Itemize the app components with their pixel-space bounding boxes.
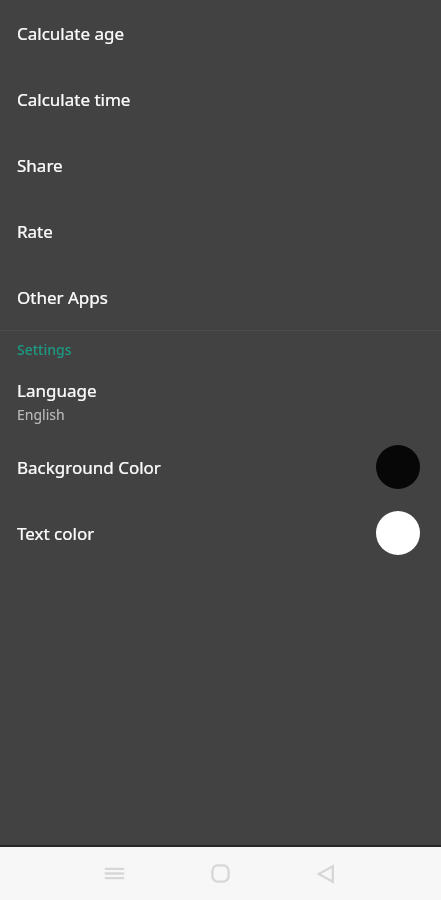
- staticText: English: [17, 405, 65, 424]
- staticText: Other Apps: [17, 286, 108, 309]
- button[interactable]: Back: [273, 847, 379, 900]
- staticText: Text color: [17, 522, 95, 545]
- button[interactable]: Home: [167, 847, 273, 900]
- button[interactable]: Recents: [62, 847, 167, 900]
- button[interactable]: Rate: [0, 198, 441, 264]
- button[interactable]: Other Apps: [0, 264, 441, 330]
- staticText: Calculate age: [17, 22, 124, 45]
- button[interactable]: Share: [0, 132, 441, 198]
- staticText: Calculate time: [17, 88, 131, 111]
- staticText: Language: [17, 379, 97, 402]
- button[interactable]: Calculate age: [0, 0, 441, 66]
- staticText: Background Color: [17, 456, 161, 479]
- button[interactable]: Calculate time: [0, 66, 441, 132]
- button[interactable]: Text color: [0, 500, 441, 566]
- button[interactable]: Language: [0, 368, 441, 434]
- staticText: Rate: [17, 220, 53, 243]
- button[interactable]: Background Color: [0, 434, 441, 500]
- staticText: Share: [17, 154, 63, 177]
- staticText: Settings: [17, 340, 72, 359]
